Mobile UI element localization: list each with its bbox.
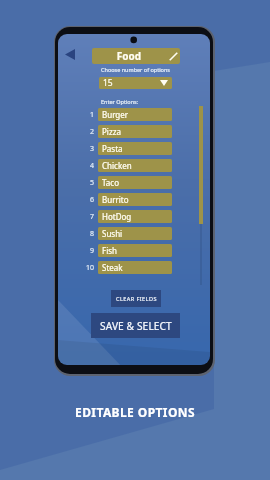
staticText: 3 — [90, 144, 95, 154]
staticText: Enter Options: — [101, 98, 139, 105]
staticText: 6 — [90, 195, 95, 205]
staticText: EDITABLE OPTIONS — [0, 404, 270, 420]
button[interactable]: Taco — [98, 176, 172, 189]
button[interactable]: SAVE & SELECT — [91, 313, 180, 338]
button[interactable]: Back — [63, 47, 77, 61]
staticText: 1 — [90, 110, 95, 120]
staticText: Steak — [102, 262, 123, 273]
button[interactable]: Burger — [98, 108, 172, 121]
button[interactable]: Chicken — [98, 159, 172, 172]
button[interactable]: Pizza — [98, 125, 172, 138]
staticText: Taco — [102, 177, 119, 188]
staticText: 10 — [86, 263, 95, 273]
staticText: CLEAR FIELDS — [116, 295, 157, 302]
button[interactable]: Burrito — [98, 193, 172, 206]
button[interactable]: Fish — [98, 244, 172, 257]
button[interactable]: Pasta — [98, 142, 172, 155]
staticText: Burrito — [102, 194, 129, 205]
staticText: Fish — [102, 245, 117, 256]
staticText: 8 — [90, 229, 95, 239]
staticText: 5 — [90, 178, 95, 188]
staticText: 4 — [90, 161, 95, 171]
staticText: 15 — [103, 77, 113, 89]
staticText: HotDog — [102, 211, 132, 222]
staticText: Sushi — [102, 228, 123, 239]
button[interactable]: HotDog — [98, 210, 172, 223]
staticText: 7 — [90, 212, 95, 222]
button[interactable]: Steak — [98, 261, 172, 274]
button[interactable]: Food — [92, 48, 180, 64]
staticText: Burger — [102, 109, 129, 120]
button[interactable]: CLEAR FIELDS — [111, 290, 161, 307]
staticText: Food — [92, 49, 166, 63]
button[interactable]: Sushi — [98, 227, 172, 240]
staticText: Pasta — [102, 143, 123, 154]
staticText: 2 — [90, 127, 95, 137]
staticText: Pizza — [102, 126, 121, 137]
button[interactable]: 15 — [99, 77, 172, 89]
staticText: SAVE & SELECT — [100, 319, 172, 333]
staticText: 9 — [90, 246, 95, 256]
staticText: Chicken — [102, 160, 132, 171]
staticText: Choose number of options — [101, 66, 170, 73]
